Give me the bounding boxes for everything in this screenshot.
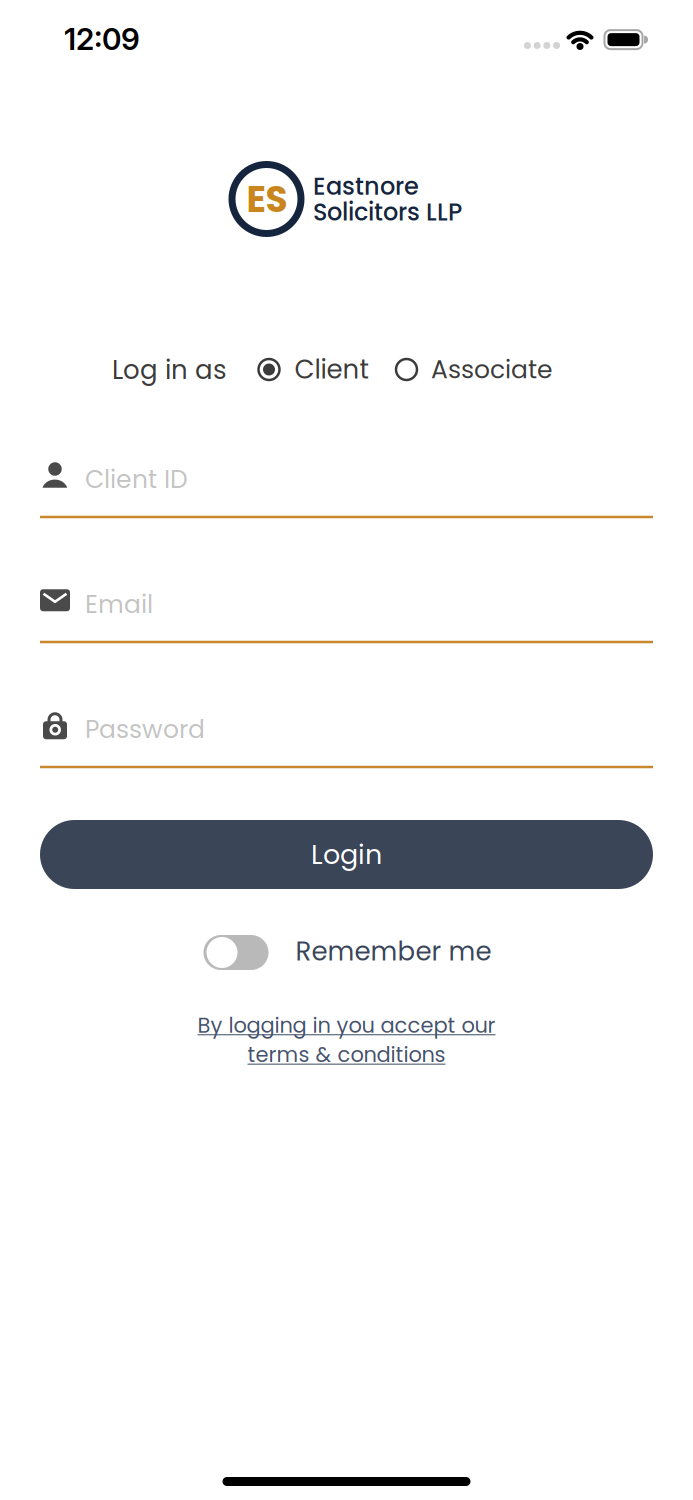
button[interactable]: Remember me — [203, 934, 491, 971]
button[interactable]: Client ID — [40, 435, 653, 518]
staticText: ES — [246, 174, 287, 225]
staticText: 12:09 — [64, 21, 140, 57]
staticText: Solicitors LLP — [313, 195, 462, 229]
button[interactable]: Login — [40, 820, 653, 889]
staticText: By logging in you accept our — [197, 1011, 495, 1040]
staticText: Password — [85, 712, 205, 747]
button[interactable]: Email — [40, 560, 653, 643]
staticText: Email — [85, 587, 153, 622]
staticText: Client — [294, 351, 368, 388]
staticText: Associate — [431, 352, 553, 387]
staticText: Remember me — [295, 933, 491, 970]
staticText: terms & conditions — [247, 1040, 445, 1069]
staticText: Client ID — [85, 462, 188, 497]
staticText: Login — [311, 836, 382, 873]
button[interactable]: Client — [257, 351, 368, 388]
button[interactable]: Password — [40, 685, 653, 768]
staticText: Eastnore — [313, 169, 419, 203]
staticText: Log in as — [112, 352, 227, 388]
button[interactable]: By logging in you accept our — [197, 1011, 495, 1069]
button[interactable]: Associate — [395, 352, 553, 387]
